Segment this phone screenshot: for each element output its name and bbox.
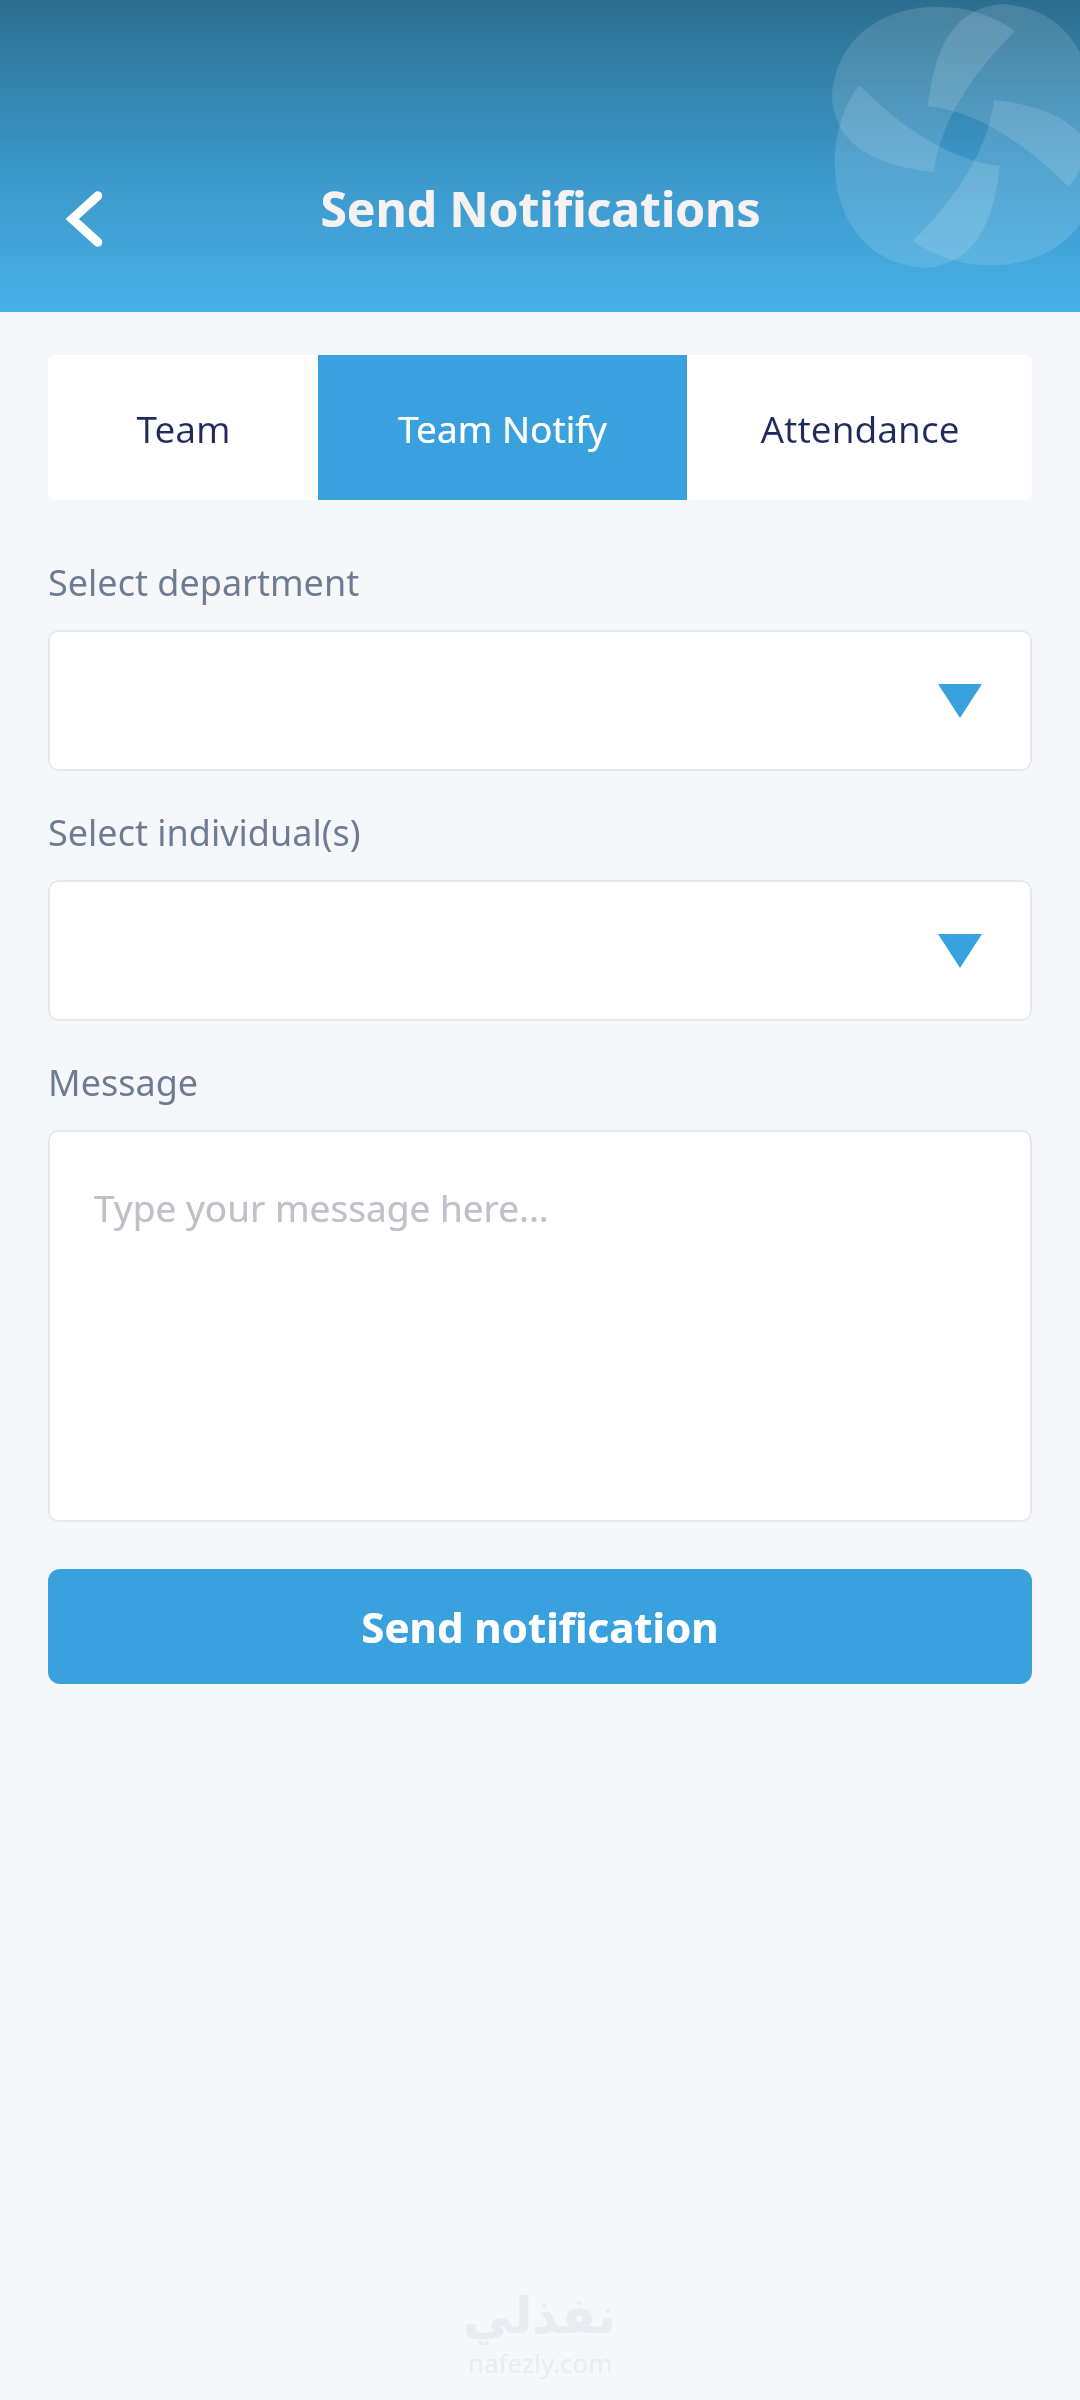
button[interactable]: Select department xyxy=(48,630,1032,771)
staticText: Select department xyxy=(48,558,360,607)
staticText: نفذلي xyxy=(463,2287,617,2345)
button[interactable]: Team xyxy=(48,355,318,500)
staticText: Send notification xyxy=(361,1598,719,1655)
button[interactable]: Select individuals xyxy=(48,880,1032,1021)
button[interactable]: Send notification xyxy=(48,1569,1032,1684)
staticText: Send Notifications xyxy=(320,176,761,241)
button[interactable]: Type your message here... xyxy=(48,1130,1032,1522)
staticText: nafezly.com xyxy=(468,2345,613,2380)
button[interactable]: Back xyxy=(32,166,138,272)
staticText: Team Notify xyxy=(398,403,607,453)
staticText: Attendance xyxy=(760,403,960,453)
staticText: Select individual(s) xyxy=(48,808,361,857)
button[interactable]: Attendance xyxy=(687,355,1032,500)
button[interactable]: Team Notify xyxy=(318,355,687,500)
staticText: Team xyxy=(136,403,231,453)
staticText: Message xyxy=(48,1058,199,1107)
staticText: Type your message here... xyxy=(94,1182,549,1232)
